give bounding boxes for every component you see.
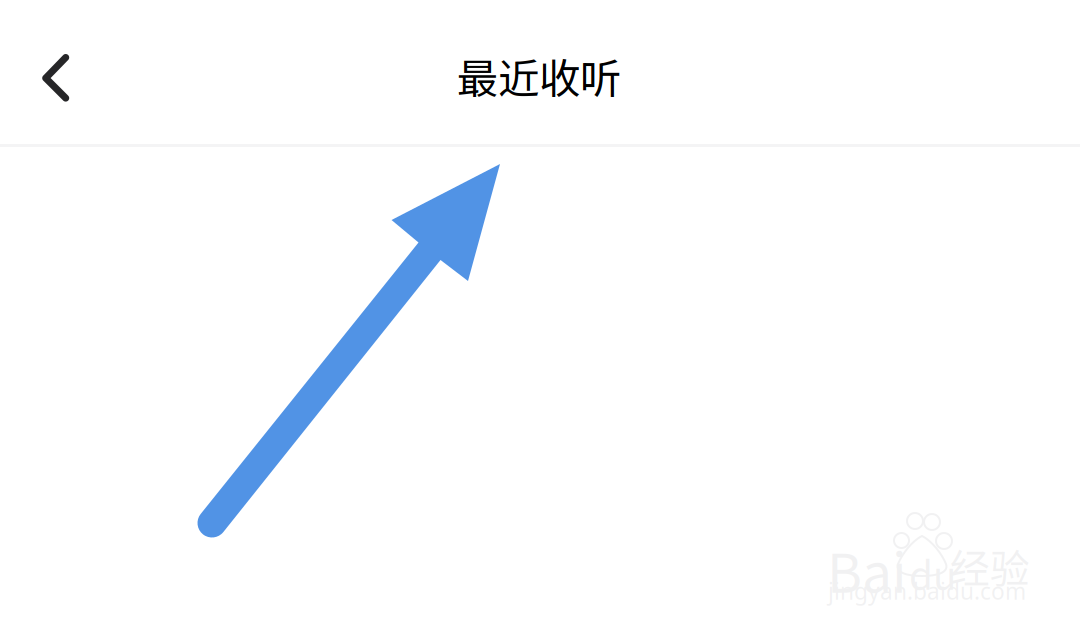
button[interactable]: Back xyxy=(0,21,96,123)
staticText: jingyan.baidu.com xyxy=(828,576,1026,606)
staticText: Bai xyxy=(827,531,907,608)
staticText: 最近收听 xyxy=(457,46,621,106)
staticText: 经验 xyxy=(950,537,1030,595)
staticText: du xyxy=(909,545,956,601)
